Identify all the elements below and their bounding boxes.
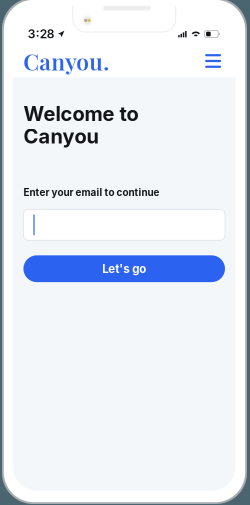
button[interactable]: Let's go xyxy=(23,255,225,282)
staticText: Canyou. xyxy=(23,46,109,76)
button[interactable]: Menu xyxy=(201,49,225,73)
staticText: Welcome to xyxy=(23,101,138,126)
staticText: Canyou xyxy=(23,124,98,148)
button[interactable]: Canyou. xyxy=(23,46,109,76)
staticText: 3:28 xyxy=(28,27,55,41)
staticText: Enter your email to continue xyxy=(23,186,159,198)
staticText: Let's go xyxy=(102,262,146,276)
